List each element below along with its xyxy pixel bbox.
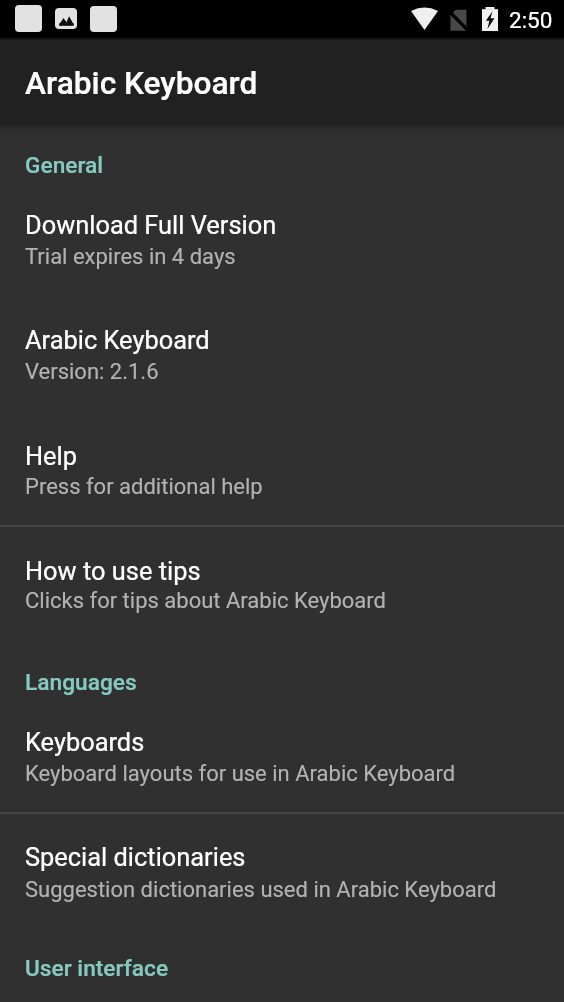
button[interactable]: Help — [0, 410, 564, 525]
staticText: Version: 2.1.6 — [25, 359, 159, 385]
staticText: Clicks for tips about Arabic Keyboard — [25, 588, 386, 614]
staticText: Arabic Keyboard — [25, 65, 258, 102]
staticText: Trial expires in 4 days — [25, 244, 236, 270]
staticText: General — [25, 152, 104, 179]
button[interactable]: How to use tips — [0, 527, 564, 640]
other: Battery charging — [482, 7, 498, 31]
staticText: Help — [25, 441, 78, 471]
button[interactable]: Arabic Keyboard — [0, 295, 564, 410]
staticText: Keyboard layouts for use in Arabic Keybo… — [25, 761, 456, 787]
other: Wi-Fi signal — [411, 7, 438, 30]
staticText: Keyboards — [25, 727, 145, 757]
button[interactable]: Arabic Keyboard — [0, 37, 564, 123]
staticText: Languages — [25, 669, 137, 696]
staticText: Download Full Version — [25, 210, 277, 240]
button[interactable]: Download Full Version — [0, 180, 564, 295]
other: Screenshot — [55, 8, 77, 29]
staticText: Suggestion dictionaries used in Arabic K… — [25, 877, 497, 903]
staticText: Special dictionaries — [25, 842, 246, 872]
button[interactable]: Keyboards — [0, 700, 564, 812]
staticText: 2:50 — [509, 7, 553, 33]
staticText: Press for additional help — [25, 474, 263, 500]
other: No SIM card — [448, 8, 470, 31]
button[interactable]: Special dictionaries — [0, 814, 564, 925]
staticText: How to use tips — [25, 556, 201, 586]
staticText: User interface — [25, 955, 169, 982]
staticText: Arabic Keyboard — [25, 325, 210, 355]
